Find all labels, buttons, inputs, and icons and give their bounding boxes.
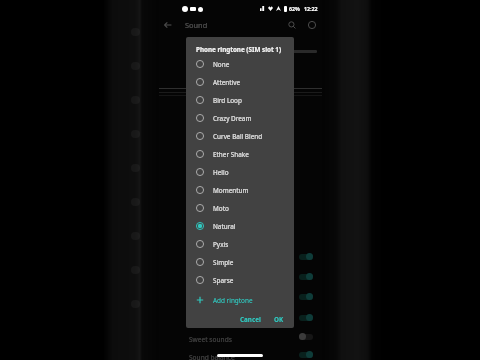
button[interactable]: Back — [161, 18, 175, 32]
staticText: Natural — [213, 222, 236, 231]
button[interactable]: Sweet sounds — [159, 330, 322, 348]
button[interactable]: Momentum — [186, 181, 294, 199]
staticText: Sweet sounds — [189, 335, 232, 344]
button[interactable]: Hello — [186, 163, 294, 181]
staticText: Hello — [213, 168, 229, 177]
button[interactable]: Help — [305, 18, 319, 32]
staticText: OK — [274, 315, 284, 324]
button[interactable]: Attentive — [186, 73, 294, 91]
staticText: Sound balance — [189, 353, 235, 360]
button[interactable]: Moto — [186, 199, 294, 217]
staticText: None — [213, 60, 230, 69]
staticText: Phone ringtone (SIM slot 1) — [196, 45, 282, 54]
button[interactable]: Sound balance — [159, 348, 322, 360]
staticText: Curve Ball Blend — [213, 132, 263, 141]
staticText: Momentum — [213, 186, 249, 195]
staticText: 12:22 — [304, 5, 318, 12]
button[interactable] — [159, 311, 322, 329]
staticText: Ether Shake — [213, 150, 249, 159]
staticText: Sound — [185, 20, 208, 30]
button[interactable]: Cancel — [236, 312, 265, 327]
button[interactable] — [159, 270, 322, 288]
button[interactable] — [159, 290, 322, 308]
staticText: Simple — [213, 258, 234, 267]
button[interactable]: Simple — [186, 253, 294, 271]
button[interactable]: OK — [270, 312, 288, 327]
button[interactable]: Search — [285, 18, 299, 32]
button[interactable] — [159, 250, 322, 268]
staticText: Attentive — [213, 78, 241, 87]
staticText: Bird Loop — [213, 96, 242, 105]
button[interactable]: Ether Shake — [186, 145, 294, 163]
staticText: Pyxis — [213, 240, 229, 249]
button[interactable]: Crazy Dream — [186, 109, 294, 127]
staticText: Cancel — [240, 315, 261, 324]
button[interactable]: Curve Ball Blend — [186, 127, 294, 145]
staticText: Moto — [213, 204, 229, 213]
button[interactable]: Bird Loop — [186, 91, 294, 109]
staticText: Add ringtone — [213, 296, 253, 305]
staticText: Sparse — [213, 276, 234, 285]
staticText: 62% — [289, 5, 300, 12]
button[interactable]: None — [186, 55, 294, 73]
button[interactable]: Natural — [186, 217, 294, 235]
staticText: Crazy Dream — [213, 114, 252, 123]
button[interactable]: Add ringtone — [186, 291, 294, 309]
button[interactable]: Pyxis — [186, 235, 294, 253]
button[interactable]: Sparse — [186, 271, 294, 289]
